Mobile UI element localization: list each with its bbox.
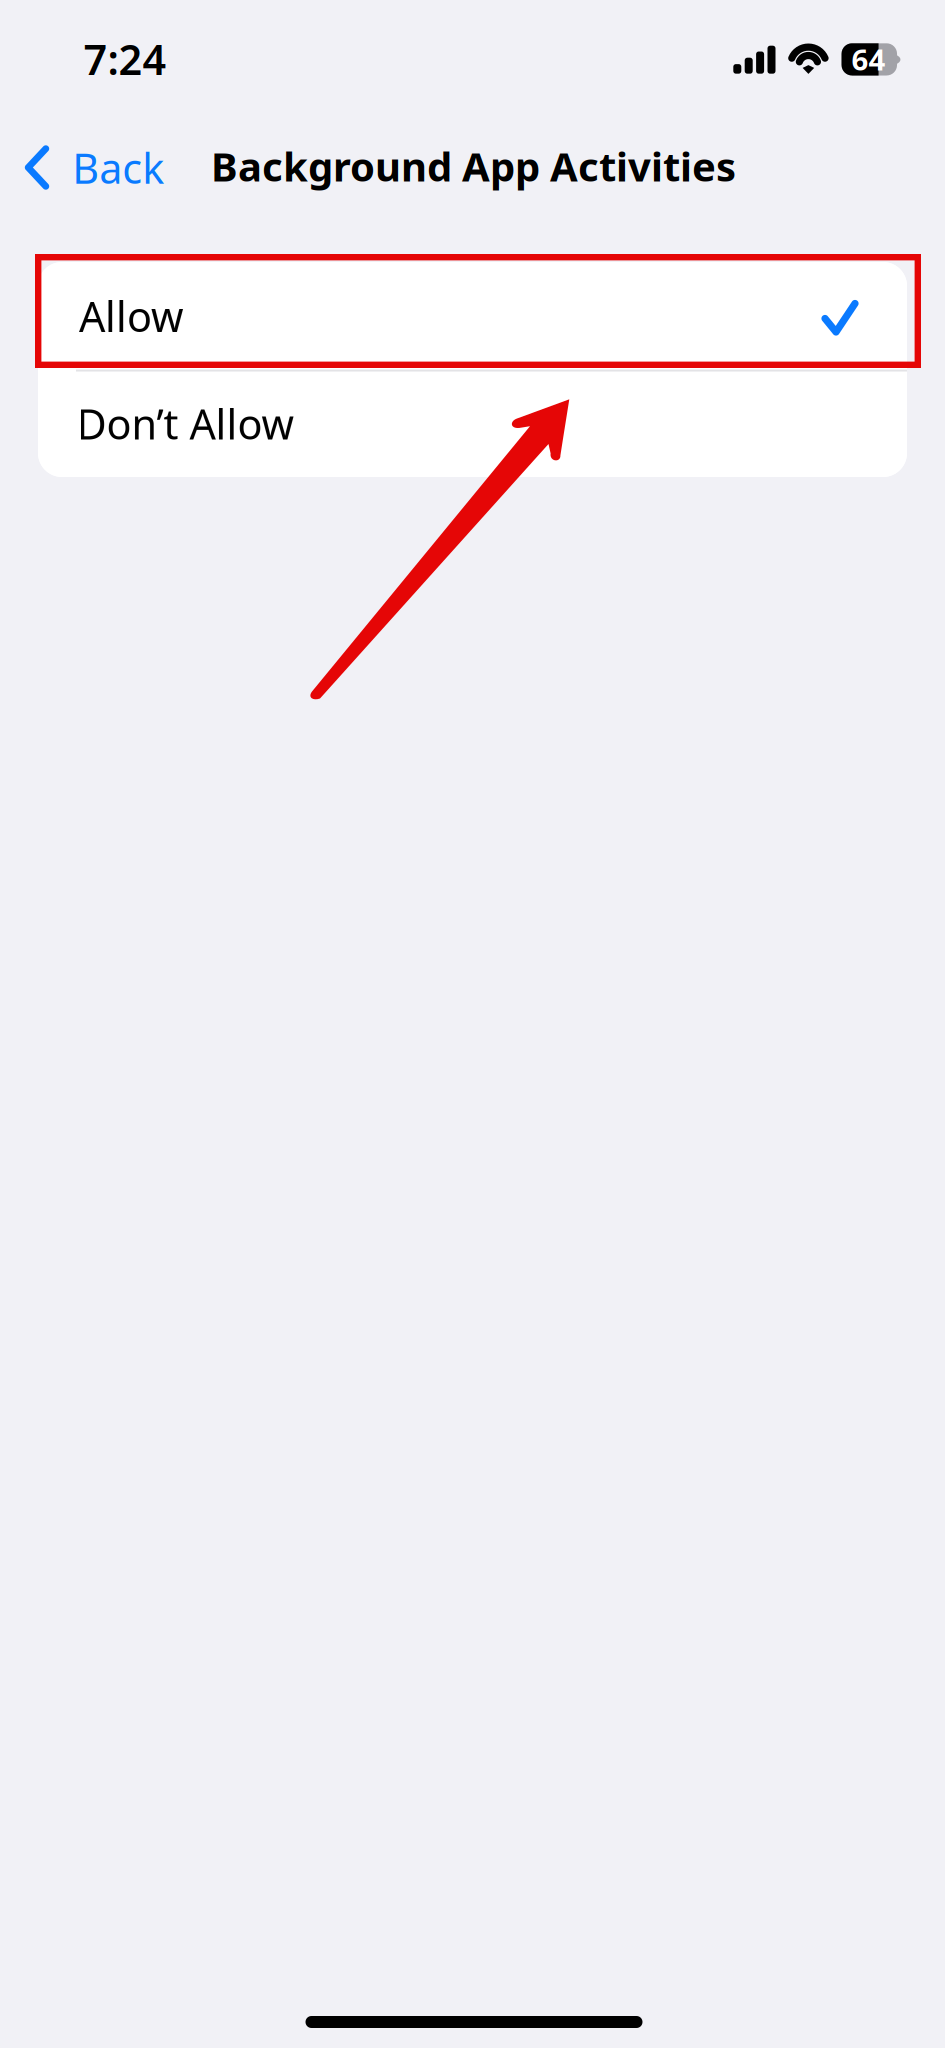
staticText: Back (72, 140, 164, 195)
button[interactable]: Back (4, 123, 168, 213)
staticText: Background App Activities (211, 139, 736, 192)
button[interactable]: Allow (38, 262, 907, 369)
staticText: 7:24 (83, 32, 166, 86)
staticText: Don’t Allow (76, 396, 293, 451)
button[interactable]: Don’t Allow (38, 369, 907, 477)
staticText: Allow (79, 289, 183, 343)
staticText: 64 (851, 40, 885, 79)
